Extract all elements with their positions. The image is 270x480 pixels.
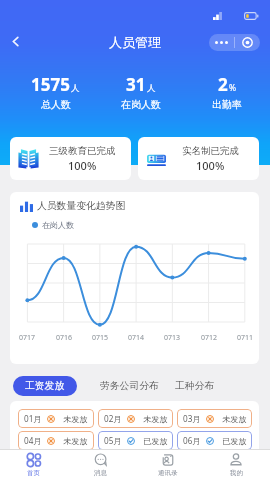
staticText: 100%	[68, 158, 97, 173]
button[interactable]: 实名制已完成	[138, 137, 259, 180]
staticText: %	[229, 82, 237, 94]
staticText: 首页	[27, 469, 40, 477]
staticText: 01月	[24, 413, 42, 424]
staticText: 实名制已完成	[182, 145, 239, 157]
button[interactable]: Back	[3, 29, 27, 53]
button[interactable]: 劳务公司分布	[100, 376, 159, 396]
staticText: 消息	[94, 469, 107, 477]
staticText: 工种分布	[175, 380, 215, 392]
button[interactable]: 工种分布	[175, 376, 215, 396]
staticText: 31	[126, 73, 146, 96]
button[interactable]: 02月	[98, 409, 173, 428]
staticText: 未发放	[143, 414, 168, 424]
staticText: 02月	[104, 413, 122, 424]
staticText: 1575	[31, 73, 70, 96]
button[interactable]: 三级教育已完成	[10, 137, 131, 180]
staticText: 总人数	[41, 98, 71, 111]
staticText: 100%	[196, 158, 225, 173]
staticText: 0711	[237, 333, 254, 343]
button[interactable]: 01月	[18, 409, 94, 428]
staticText: 通讯录	[158, 469, 178, 477]
staticText: 06月	[183, 435, 201, 446]
button[interactable]: 首页	[0, 450, 67, 480]
staticText: 我的	[230, 469, 243, 477]
staticText: 出勤率	[212, 98, 242, 111]
staticText: 未发放	[222, 414, 247, 424]
staticText: 0714	[128, 333, 145, 343]
staticText: 未发放	[63, 414, 88, 424]
button[interactable]: 工资发放	[13, 376, 77, 396]
staticText: 工资发放	[25, 380, 65, 392]
button[interactable]: 03月	[177, 409, 252, 428]
staticText: 人	[147, 83, 156, 94]
button[interactable]: 06月	[177, 431, 252, 450]
button[interactable]: 消息	[67, 450, 134, 480]
button[interactable]: 04月	[18, 431, 94, 450]
staticText: 0716	[56, 333, 73, 343]
staticText: 人员管理	[109, 34, 161, 50]
staticText: 05月	[104, 435, 122, 446]
button[interactable]: Menu	[209, 34, 260, 51]
staticText: 2	[218, 73, 228, 96]
staticText: 已发放	[143, 436, 168, 446]
staticText: 劳务公司分布	[100, 380, 159, 392]
staticText: 人员数量变化趋势图	[37, 200, 126, 212]
staticText: 03月	[183, 413, 201, 424]
staticText: 在岗人数	[121, 98, 161, 111]
button[interactable]: 通讯录	[134, 450, 202, 480]
staticText: 04月	[24, 435, 42, 446]
staticText: 0712	[201, 333, 218, 343]
staticText: 未发放	[63, 436, 88, 446]
staticText: 三级教育已完成	[49, 145, 116, 157]
button[interactable]: 我的	[202, 450, 270, 480]
staticText: 已发放	[222, 436, 247, 446]
staticText: 0717	[19, 333, 36, 343]
staticText: 在岗人数	[42, 220, 74, 230]
staticText: 0713	[164, 333, 181, 343]
staticText: 人	[71, 83, 80, 94]
button[interactable]: 05月	[98, 431, 173, 450]
staticText: 0715	[92, 333, 109, 343]
